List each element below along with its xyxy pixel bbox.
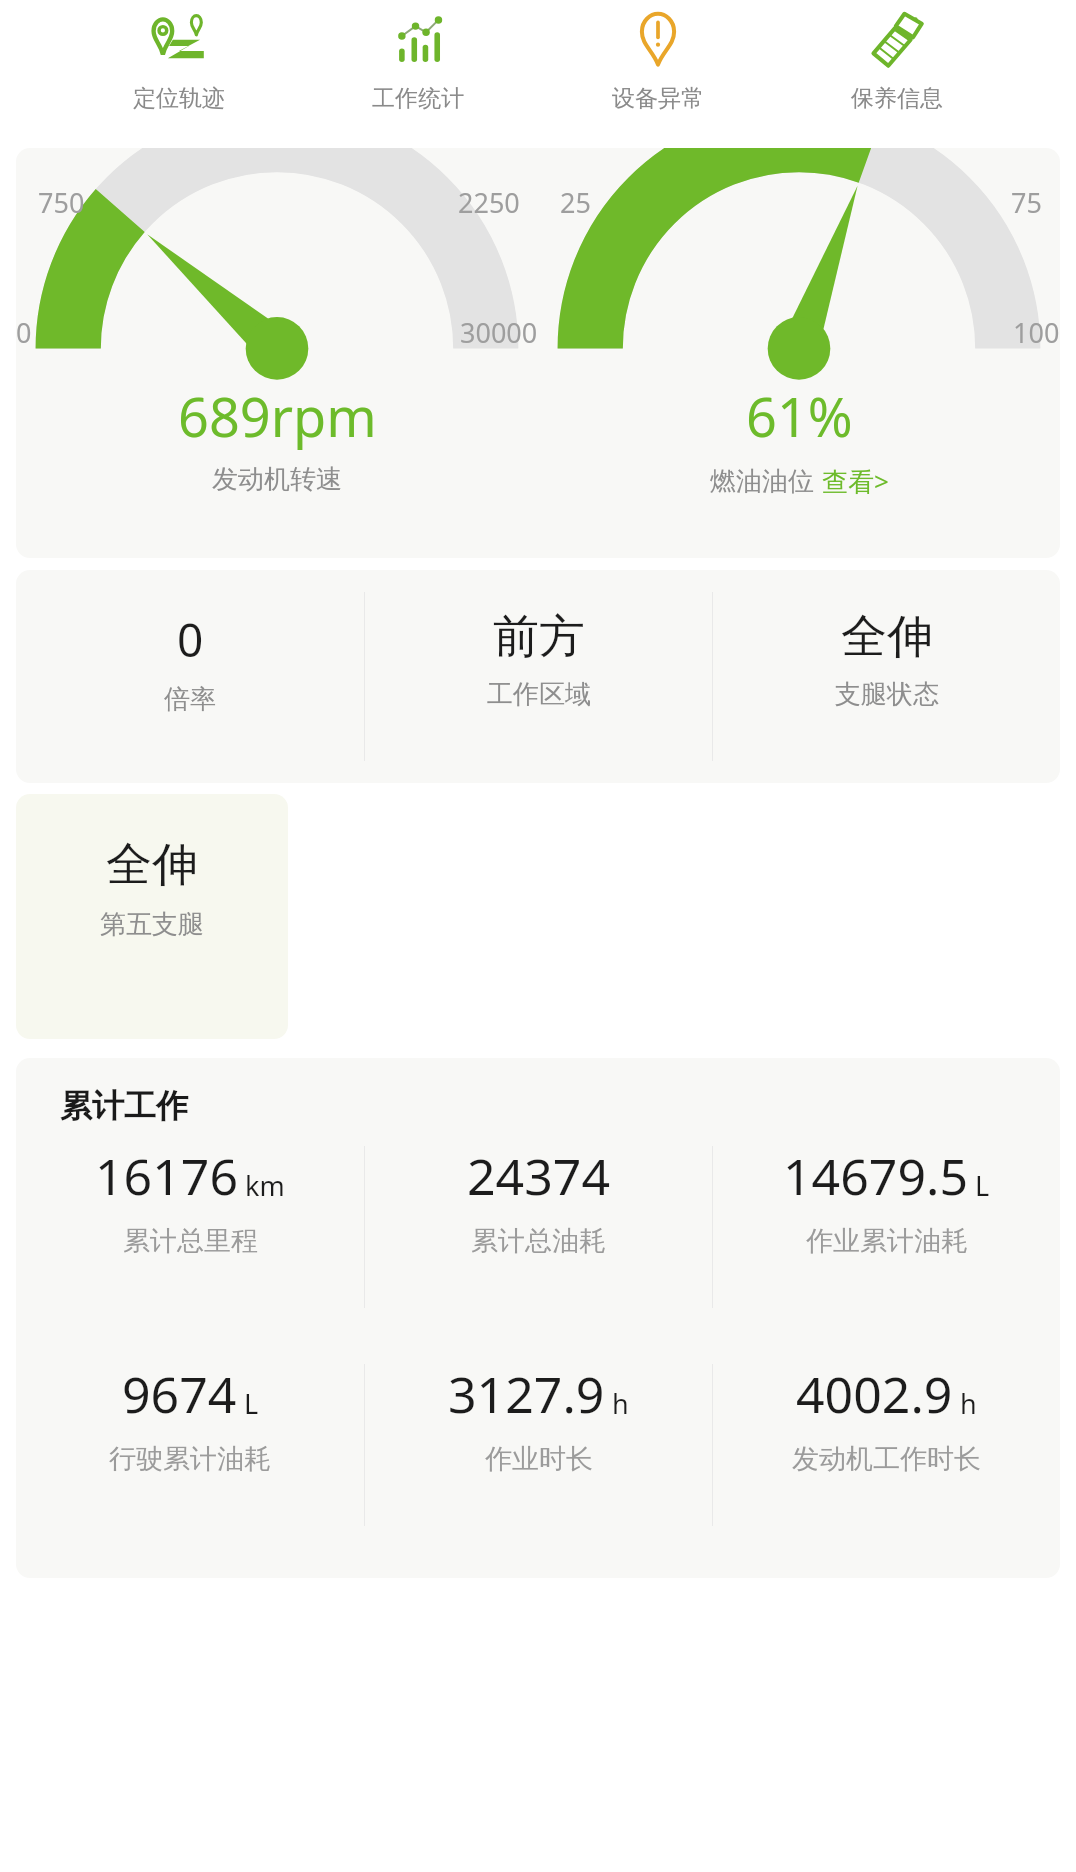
staticText: 16176 bbox=[95, 1142, 238, 1210]
button[interactable]: 全伸 bbox=[713, 570, 1060, 783]
staticText: 0 bbox=[16, 314, 32, 351]
staticText: 30000 bbox=[460, 314, 538, 351]
staticText: 倍率 bbox=[164, 683, 216, 716]
staticText: 累计总油耗 bbox=[471, 1224, 606, 1258]
staticText: 0 bbox=[177, 608, 204, 671]
staticText: h bbox=[612, 1385, 629, 1422]
staticText: 燃油油位 bbox=[710, 465, 814, 498]
staticText: 累计工作 bbox=[60, 1086, 188, 1126]
button[interactable]: 0 bbox=[16, 570, 364, 783]
staticText: 作业时长 bbox=[485, 1442, 593, 1476]
staticText: 2250 bbox=[458, 184, 520, 221]
button[interactable]: 14679.5 bbox=[713, 1142, 1060, 1312]
staticText: 100 bbox=[1013, 314, 1060, 351]
staticText: 25 bbox=[560, 184, 591, 221]
button[interactable]: 4002.9 bbox=[713, 1360, 1060, 1530]
staticText: L bbox=[975, 1167, 990, 1204]
button[interactable]: 24374 bbox=[365, 1142, 712, 1312]
button[interactable]: 3127.9 bbox=[365, 1360, 712, 1530]
staticText: 保养信息 bbox=[851, 84, 943, 113]
staticText: 750 bbox=[38, 184, 85, 221]
button[interactable]: 保养信息 bbox=[837, 0, 957, 148]
staticText: 75 bbox=[1011, 184, 1042, 221]
button[interactable]: 查看> bbox=[822, 463, 889, 499]
staticText: h bbox=[960, 1385, 977, 1422]
staticText: 支腿状态 bbox=[835, 678, 939, 711]
button[interactable]: 工作统计 bbox=[358, 0, 478, 148]
staticText: 24374 bbox=[467, 1142, 610, 1210]
staticText: 发动机工作时长 bbox=[792, 1442, 981, 1476]
staticText: 查看> bbox=[822, 463, 889, 499]
staticText: L bbox=[244, 1385, 259, 1422]
staticText: 工作区域 bbox=[487, 678, 591, 711]
staticText: 全伸 bbox=[841, 608, 933, 666]
staticText: 全伸 bbox=[106, 836, 198, 894]
staticText: 设备异常 bbox=[612, 84, 704, 113]
staticText: 累计总里程 bbox=[123, 1224, 258, 1258]
staticText: 4002.9 bbox=[796, 1360, 953, 1428]
staticText: 9674 bbox=[122, 1360, 237, 1428]
staticText: 工作统计 bbox=[372, 84, 464, 113]
staticText: 作业累计油耗 bbox=[806, 1224, 968, 1258]
button[interactable]: 前方 bbox=[365, 570, 712, 783]
staticText: 发动机转速 bbox=[212, 463, 342, 496]
button[interactable]: 设备异常 bbox=[598, 0, 718, 148]
staticText: 14679.5 bbox=[783, 1142, 968, 1210]
staticText: 定位轨迹 bbox=[133, 84, 225, 113]
staticText: 前方 bbox=[493, 608, 585, 666]
staticText: 第五支腿 bbox=[100, 908, 204, 941]
staticText: 689rpm bbox=[178, 379, 377, 453]
button[interactable]: 9674 bbox=[16, 1360, 364, 1530]
staticText: 行驶累计油耗 bbox=[109, 1442, 271, 1476]
button[interactable]: 定位轨迹 bbox=[119, 0, 239, 148]
button[interactable]: 16176 bbox=[16, 1142, 364, 1312]
staticText: km bbox=[245, 1167, 285, 1204]
staticText: 61% bbox=[746, 379, 853, 453]
staticText: 3127.9 bbox=[448, 1360, 605, 1428]
button[interactable]: 全伸 bbox=[16, 794, 288, 1039]
